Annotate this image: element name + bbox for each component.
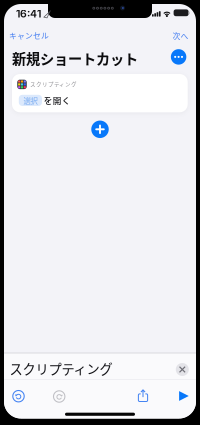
button[interactable]: Search field: スクリプティング [4, 356, 196, 382]
button[interactable]: Run shortcut [179, 391, 189, 401]
staticText: キャンセル [9, 30, 49, 41]
button[interactable]: Undo [12, 390, 25, 403]
staticText: スクリプティング [30, 80, 77, 88]
button[interactable]: Redo [53, 390, 66, 403]
button[interactable]: More options [171, 49, 186, 65]
button[interactable]: Clear search [176, 363, 189, 376]
button[interactable]: Share [137, 388, 149, 402]
button[interactable]: 選択 [19, 95, 42, 106]
staticText: 新規ショートカット [12, 48, 138, 68]
staticText: 次へ [172, 30, 188, 41]
button[interactable]: キャンセル [9, 30, 49, 41]
button[interactable]: Add action [91, 120, 109, 138]
staticText: を開く [44, 94, 71, 106]
button[interactable]: Open App action [12, 74, 188, 112]
staticText: 選択 [23, 95, 37, 106]
staticText: 16:41 [16, 7, 41, 20]
staticText: スクリプティング [9, 359, 112, 378]
button[interactable]: 次へ [172, 30, 188, 41]
